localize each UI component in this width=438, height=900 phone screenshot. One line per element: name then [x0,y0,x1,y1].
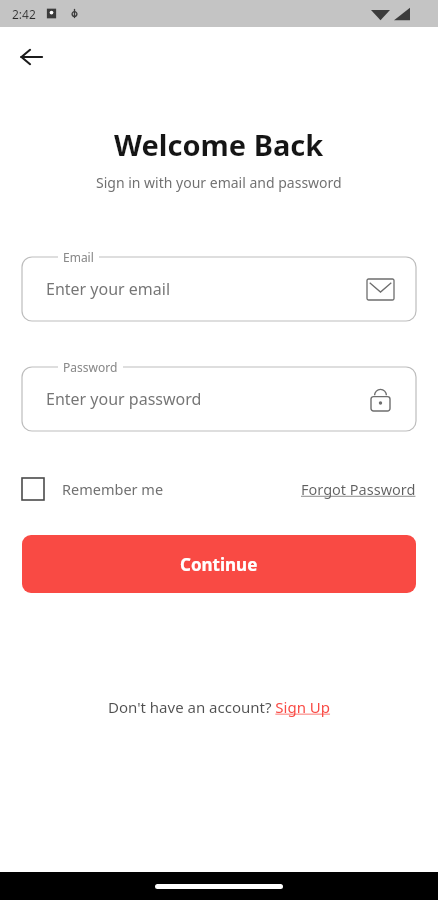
button[interactable]: Don't have an account? Sign Up [108,697,331,717]
staticText: Don't have an account? Sign Up [108,697,331,717]
staticText: Email [63,249,94,265]
staticText: 2:42 [12,6,36,22]
staticText: Continue [180,553,258,576]
staticText: Enter your email [46,278,171,300]
button[interactable]: Enter your password [22,367,416,431]
staticText: Forgot Password [301,479,416,499]
staticText: Enter your password [46,388,202,410]
button[interactable]: Enter your email [22,257,416,321]
staticText: Welcome Back [114,125,324,164]
staticText: Password [63,359,118,375]
staticText: Sign in with your email and password [96,173,342,192]
button[interactable]: Remember me [22,478,164,500]
button[interactable]: Forgot Password [301,479,416,499]
button[interactable]: Continue [22,535,416,593]
button[interactable]: Back [10,35,54,79]
staticText: Remember me [62,479,164,499]
